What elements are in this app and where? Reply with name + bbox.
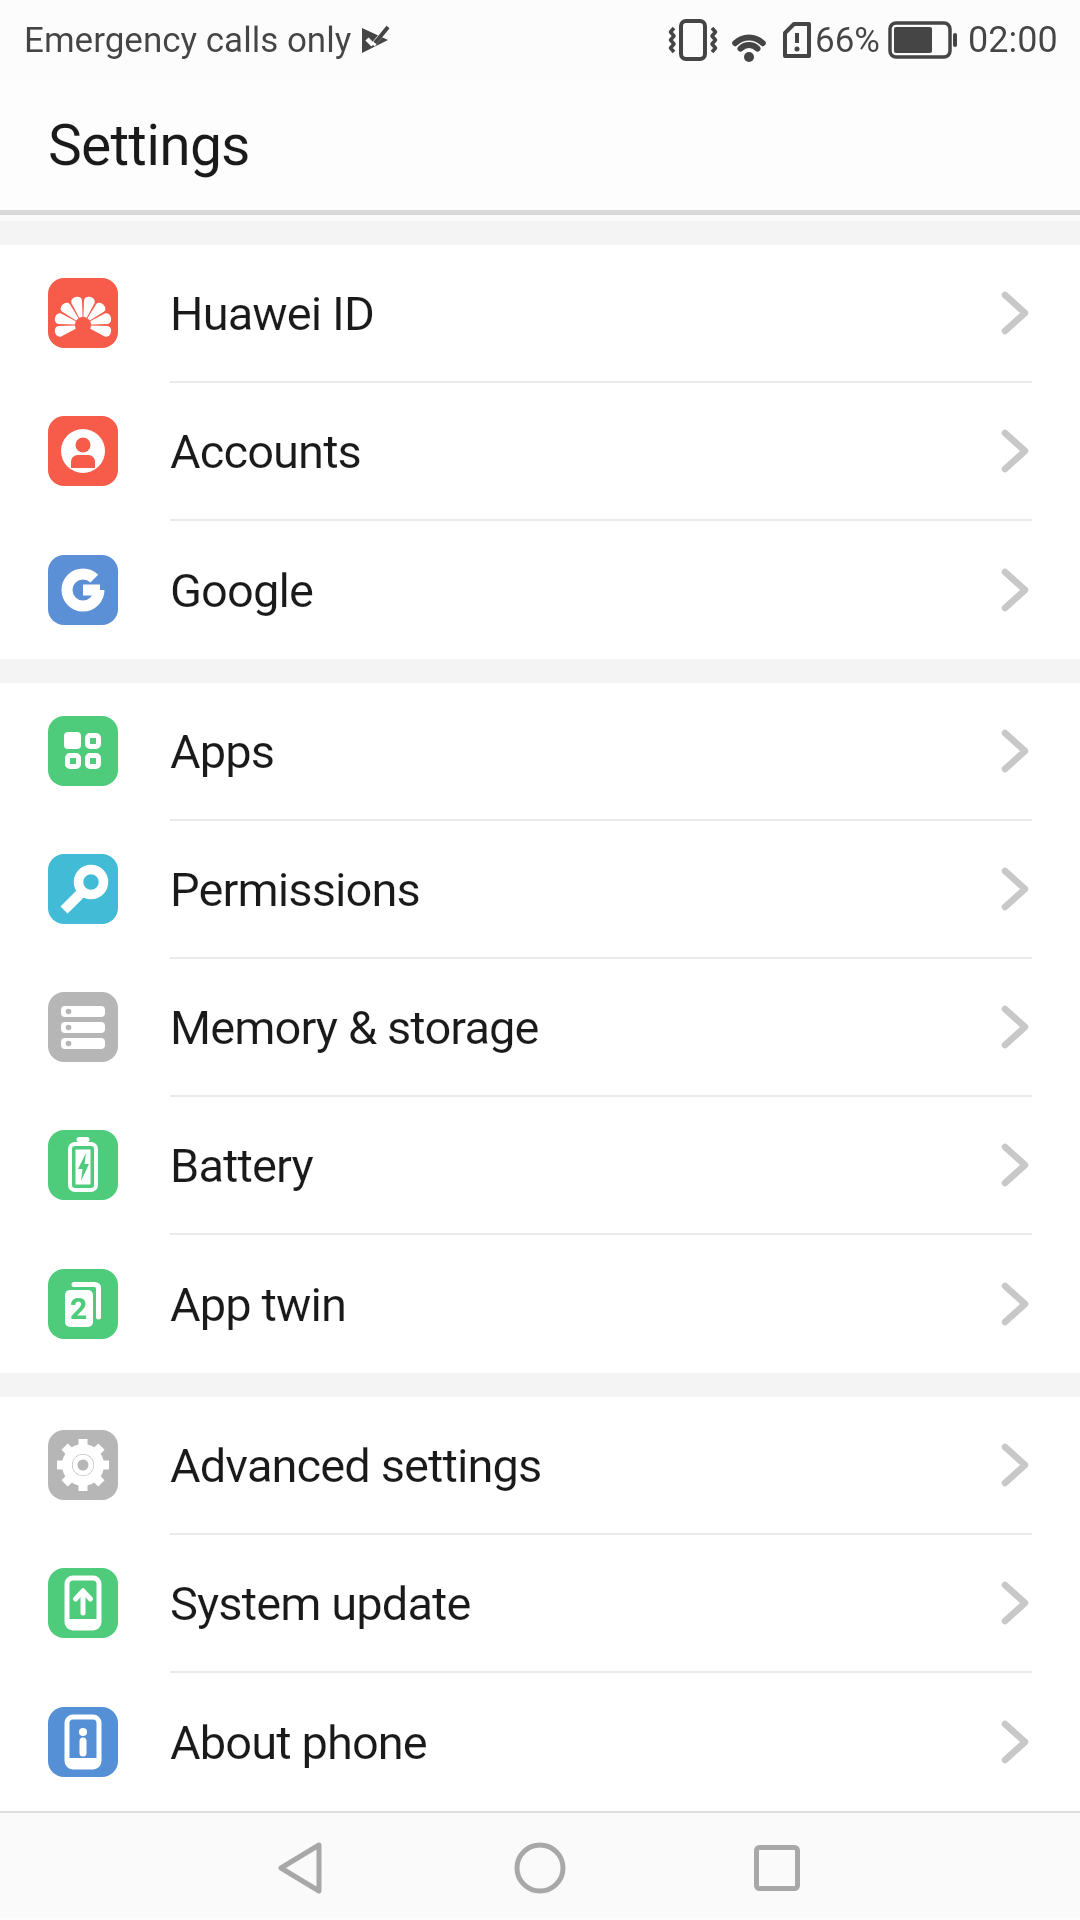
button[interactable]: Advanced settings: [0, 1397, 1080, 1533]
button[interactable]: Memory & storage: [0, 959, 1080, 1095]
button[interactable]: [747, 1842, 807, 1894]
button[interactable]: Google: [0, 521, 1080, 659]
staticText: Battery: [170, 1138, 313, 1193]
staticText: 2: [70, 1291, 88, 1326]
staticText: Settings: [48, 112, 250, 179]
staticText: Emergency calls only: [24, 20, 352, 61]
button[interactable]: Permissions: [0, 821, 1080, 957]
button[interactable]: Battery: [0, 1097, 1080, 1233]
staticText: 02:00: [968, 19, 1058, 61]
staticText: Apps: [170, 724, 275, 779]
staticText: Accounts: [170, 424, 361, 479]
staticText: Google: [170, 563, 313, 618]
staticText: App twin: [170, 1277, 346, 1332]
button[interactable]: Apps: [0, 683, 1080, 819]
staticText: 66%: [815, 20, 880, 61]
button[interactable]: About phone: [0, 1673, 1080, 1811]
staticText: About phone: [170, 1715, 427, 1770]
button[interactable]: [510, 1842, 570, 1894]
staticText: Permissions: [170, 862, 420, 917]
button[interactable]: System update: [0, 1535, 1080, 1671]
button[interactable]: Huawei ID: [0, 245, 1080, 381]
staticText: Advanced settings: [170, 1438, 542, 1493]
staticText: Memory & storage: [170, 1000, 539, 1055]
staticText: System update: [170, 1576, 471, 1631]
button[interactable]: 2: [0, 1235, 1080, 1373]
button[interactable]: Accounts: [0, 383, 1080, 519]
staticText: Huawei ID: [170, 286, 374, 341]
button[interactable]: [270, 1842, 330, 1894]
